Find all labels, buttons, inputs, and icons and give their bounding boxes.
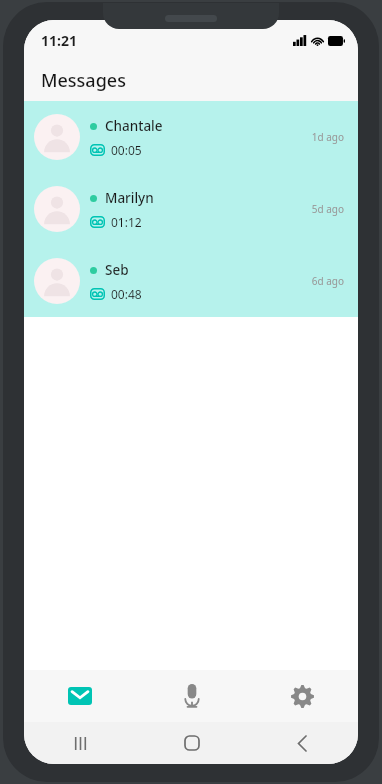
staticText: 5d ago xyxy=(311,202,344,216)
button[interactable]: Home xyxy=(136,722,247,764)
staticText: Marilyn xyxy=(105,189,154,207)
staticText: 1d ago xyxy=(311,130,344,144)
button[interactable]: Marilyn xyxy=(24,173,358,245)
staticText: 6d ago xyxy=(311,274,344,288)
staticText: 00:48 xyxy=(111,286,142,302)
button[interactable]: Settings xyxy=(247,670,358,722)
staticText: Messages xyxy=(41,68,126,93)
button[interactable]: Recent apps xyxy=(24,722,136,764)
staticText: Seb xyxy=(105,261,129,279)
staticText: 11:21 xyxy=(41,31,77,50)
button[interactable]: Chantale xyxy=(24,101,358,173)
staticText: Chantale xyxy=(105,117,163,135)
button[interactable]: Record voice message xyxy=(136,670,247,722)
staticText: 00:05 xyxy=(111,142,142,158)
button[interactable]: Seb xyxy=(24,245,358,317)
button[interactable]: Messages xyxy=(24,670,136,722)
staticText: 01:12 xyxy=(111,214,142,230)
button[interactable]: Back xyxy=(247,722,358,764)
